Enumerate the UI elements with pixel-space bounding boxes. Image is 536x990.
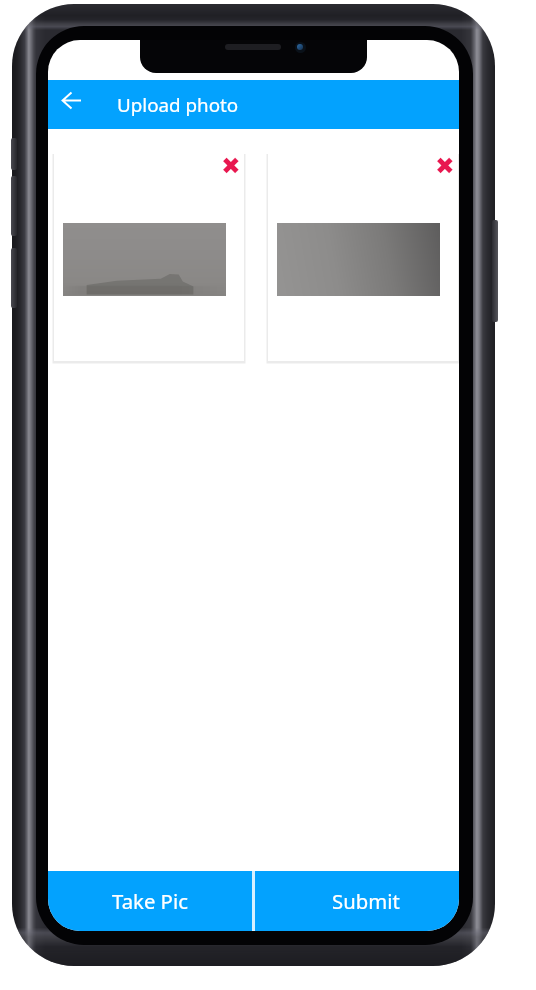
button[interactable]: Remove photo [433, 152, 457, 178]
button[interactable]: Remove photo [219, 152, 243, 178]
staticText: ✖ [435, 152, 455, 178]
button[interactable]: Take Pic [48, 871, 252, 931]
staticText: Upload photo [117, 92, 239, 118]
button[interactable]: Remove photo [54, 153, 244, 361]
button[interactable]: Submit [255, 871, 459, 931]
staticText: ✖ [221, 152, 241, 178]
staticText: Submit [332, 887, 400, 915]
button[interactable]: Back [48, 80, 94, 129]
staticText: Take Pic [112, 887, 188, 915]
button[interactable]: Remove photo [268, 153, 458, 361]
